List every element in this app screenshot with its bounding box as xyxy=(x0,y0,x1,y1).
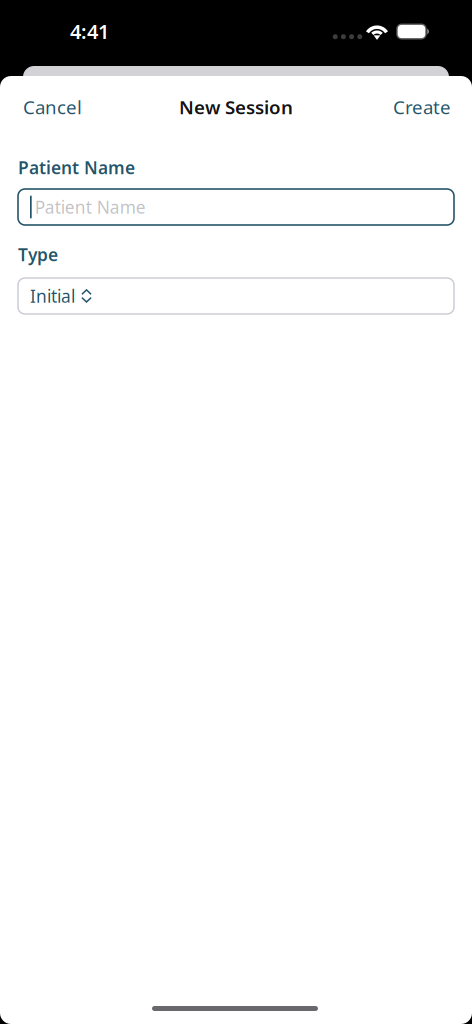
staticText: Patient Name xyxy=(18,156,135,179)
staticText: Create xyxy=(393,95,451,119)
staticText: Type xyxy=(18,243,58,266)
staticText: Cancel xyxy=(23,95,82,119)
button[interactable]: Patient Name xyxy=(18,189,454,225)
button[interactable]: Create xyxy=(379,85,472,129)
button[interactable]: Cancel xyxy=(0,85,96,129)
staticText: Initial xyxy=(30,284,75,307)
staticText: New Session xyxy=(179,95,293,119)
button[interactable]: Initial xyxy=(18,278,454,314)
staticText: Patient Name xyxy=(35,195,146,218)
staticText: 4:41 xyxy=(70,18,109,45)
